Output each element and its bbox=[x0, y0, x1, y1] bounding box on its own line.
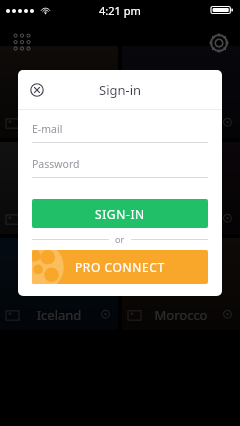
staticText: E-mail bbox=[32, 122, 63, 136]
staticText: Sign-in bbox=[99, 81, 142, 99]
staticText: PRO CONNECT bbox=[75, 259, 165, 275]
staticText: Password bbox=[32, 157, 80, 171]
button[interactable]: PRO CONNECT bbox=[32, 250, 208, 284]
button[interactable]: Categories bbox=[12, 32, 34, 54]
staticText: England bbox=[19, 210, 99, 228]
button[interactable]: E-mail bbox=[32, 122, 208, 143]
staticText: SIGN-IN bbox=[95, 206, 145, 222]
button[interactable]: England bbox=[0, 142, 118, 234]
button[interactable]: Password bbox=[32, 157, 208, 178]
staticText: Morocco bbox=[141, 306, 221, 324]
staticText: New York bbox=[19, 114, 99, 132]
staticText: or bbox=[115, 233, 125, 245]
button[interactable]: Close bbox=[27, 80, 47, 100]
button[interactable]: New York bbox=[0, 46, 118, 138]
button[interactable]: SIGN-IN bbox=[32, 199, 208, 228]
staticText: 4:21 pm bbox=[99, 3, 141, 18]
button[interactable]: California bbox=[122, 46, 240, 138]
button[interactable]: Amsterdam bbox=[122, 142, 240, 234]
staticText: Amsterdam bbox=[141, 210, 221, 228]
button[interactable]: Settings bbox=[208, 32, 230, 54]
staticText: Iceland bbox=[19, 306, 99, 324]
button[interactable]: Morocco bbox=[122, 238, 240, 330]
button[interactable]: Iceland bbox=[0, 238, 118, 330]
